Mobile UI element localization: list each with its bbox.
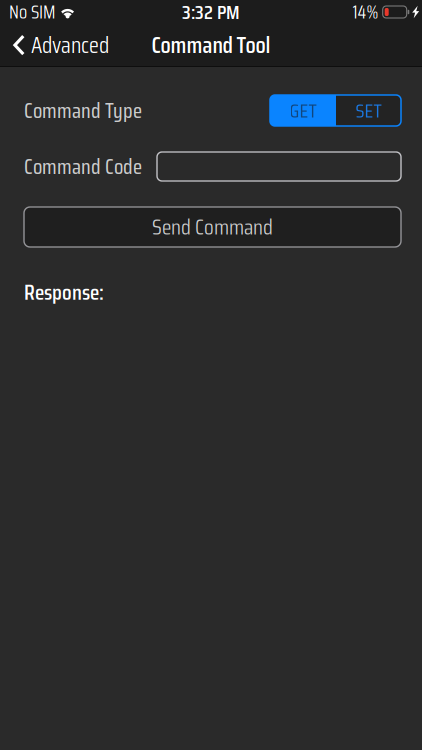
staticText: Advanced: [31, 27, 109, 63]
staticText: Send Command: [152, 210, 273, 244]
button[interactable]: SET: [336, 95, 401, 126]
button[interactable]: Advanced: [0, 19, 119, 71]
staticText: GET: [289, 95, 316, 126]
staticText: SET: [355, 95, 381, 126]
staticText: Command Tool: [151, 27, 270, 63]
staticText: No SIM: [9, 0, 55, 27]
staticText: 14%: [352, 0, 378, 27]
staticText: Command Code: [24, 150, 142, 183]
staticText: Response:: [24, 275, 104, 309]
staticText: 3:32 PM: [182, 0, 240, 28]
button[interactable]: Send Command: [24, 207, 401, 247]
button[interactable]: GET: [270, 95, 336, 126]
staticText: Command Type: [24, 94, 142, 127]
